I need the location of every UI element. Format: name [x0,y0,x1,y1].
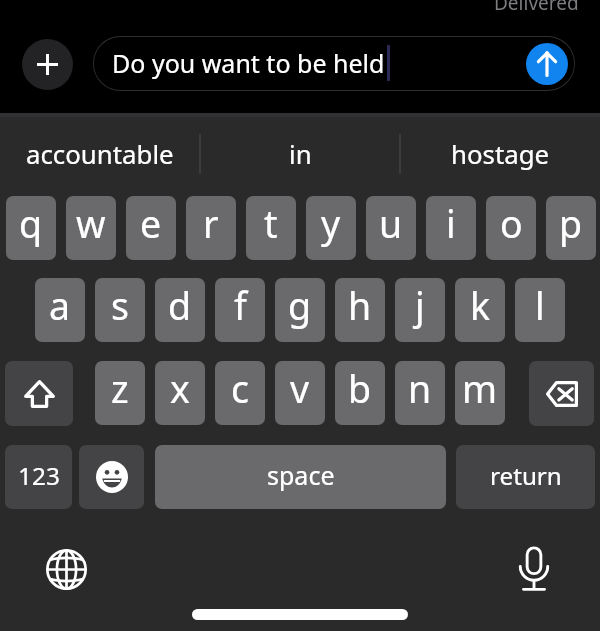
button[interactable]: w [66,196,116,260]
staticText: 123 [18,459,60,492]
button[interactable]: u [366,196,416,260]
button[interactable]: m [455,361,505,425]
staticText: e [140,198,162,249]
button[interactable]: t [246,196,296,260]
button[interactable]: e [126,196,176,260]
button[interactable]: Shift [5,361,73,426]
button[interactable]: space [155,445,446,509]
staticText: return [490,459,562,492]
staticText: q [19,198,43,249]
button[interactable]: Backspace [529,361,594,426]
button[interactable]: n [395,361,445,425]
button[interactable]: return [456,445,595,509]
staticText: h [348,280,372,331]
button[interactable]: h [335,278,385,342]
button[interactable]: i [426,196,476,260]
button[interactable]: z [95,361,145,425]
button[interactable]: a [35,278,85,342]
staticText: v [290,363,310,414]
button[interactable]: d [155,278,205,342]
staticText: Do you want to be held [112,46,385,80]
button[interactable]: p [546,196,596,260]
staticText: k [470,280,491,331]
staticText: n [408,363,432,414]
staticText: x [170,363,190,414]
staticText: c [231,363,249,414]
button[interactable]: s [95,278,145,342]
staticText: d [168,280,192,331]
staticText: in [289,136,312,171]
button[interactable]: j [395,278,445,342]
button[interactable]: l [515,278,565,342]
staticText: w [76,198,106,249]
staticText: s [111,280,129,331]
button[interactable]: Add attachment [22,39,73,90]
staticText: f [234,280,247,331]
staticText: j [415,280,425,331]
staticText: Delivered [494,0,579,16]
staticText: space [267,458,335,492]
button[interactable]: x [155,361,205,425]
button[interactable]: hostage [400,117,600,191]
button[interactable]: k [455,278,505,342]
button[interactable]: Do you want to be held [93,36,575,91]
staticText: hostage [451,136,550,171]
button[interactable]: o [486,196,536,260]
staticText: g [288,280,312,331]
staticText: p [559,198,583,249]
button[interactable]: r [186,196,236,260]
staticText: m [462,363,498,414]
staticText: r [203,198,219,249]
button[interactable]: c [215,361,265,425]
button[interactable]: Emoji [79,445,144,509]
staticText: accountable [26,136,174,171]
staticText: z [111,363,129,414]
staticText: i [446,198,456,249]
staticText: t [264,198,278,249]
button[interactable]: v [275,361,325,425]
button[interactable]: in [200,117,400,191]
button[interactable]: q [6,196,56,260]
button[interactable]: Change keyboard language [42,545,90,593]
staticText: a [49,280,71,331]
button[interactable]: b [335,361,385,425]
button[interactable]: accountable [0,117,200,191]
staticText: u [379,198,403,249]
button[interactable]: y [306,196,356,260]
staticText: b [348,363,372,414]
button[interactable]: Dictation [510,544,558,592]
staticText: l [535,280,545,331]
button[interactable]: g [275,278,325,342]
staticText: y [321,198,341,249]
button[interactable]: Send [526,43,568,85]
staticText: o [500,198,523,249]
button[interactable]: f [215,278,265,342]
button[interactable]: 123 [5,445,72,509]
